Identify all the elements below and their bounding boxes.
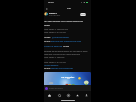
staticText: Subscribe	[80, 14, 86, 16]
staticText: Thread	[63, 45, 70, 48]
staticText: Detailed performance figures for cascade…	[44, 50, 88, 59]
button[interactable]: You	[82, 92, 91, 99]
staticText: 06:07	[48, 1, 54, 4]
button[interactable]: Subscriptions	[73, 92, 82, 99]
staticText: youtube.com/rocketx/per	[51, 67, 74, 70]
staticText: ABC Flight Simulator 2024 Cascade Perfor…	[44, 20, 83, 26]
button[interactable]: Post image	[44, 72, 91, 86]
staticText: Air Booster	[61, 75, 75, 78]
button[interactable]: Channel avatar	[44, 12, 48, 16]
staticText: Source:	[44, 40, 51, 43]
staticText: rocketx.example	[44, 64, 59, 67]
staticText: 2024	[67, 78, 70, 80]
staticText: Post	[67, 7, 71, 10]
staticText: Thanks:	[44, 36, 52, 39]
staticText: Contact us about the	[44, 45, 63, 48]
button[interactable]: Home	[44, 92, 54, 99]
staticText: @rocketsimulations	[52, 36, 70, 39]
staticText: 93.4K subscribers	[49, 15, 61, 16]
button[interactable]: Back	[44, 6, 49, 11]
staticText: Atlas Series 4: 1080P 60 FPS Atlas Serie…	[44, 28, 68, 34]
staticText: Rocket X	[49, 12, 57, 15]
staticText: Tracks and shorts	[49, 87, 63, 89]
button[interactable]: Tracks and shorts	[44, 85, 91, 91]
button[interactable]: Shorts	[54, 92, 64, 99]
staticText: everyone who supported the show	[51, 40, 81, 43]
staticText: Atlas Series 5: 4K 120 FPS	[44, 61, 66, 64]
button[interactable]: Create	[64, 92, 73, 99]
staticText: Source:	[44, 67, 51, 70]
button[interactable]: Subscribe	[80, 13, 86, 16]
